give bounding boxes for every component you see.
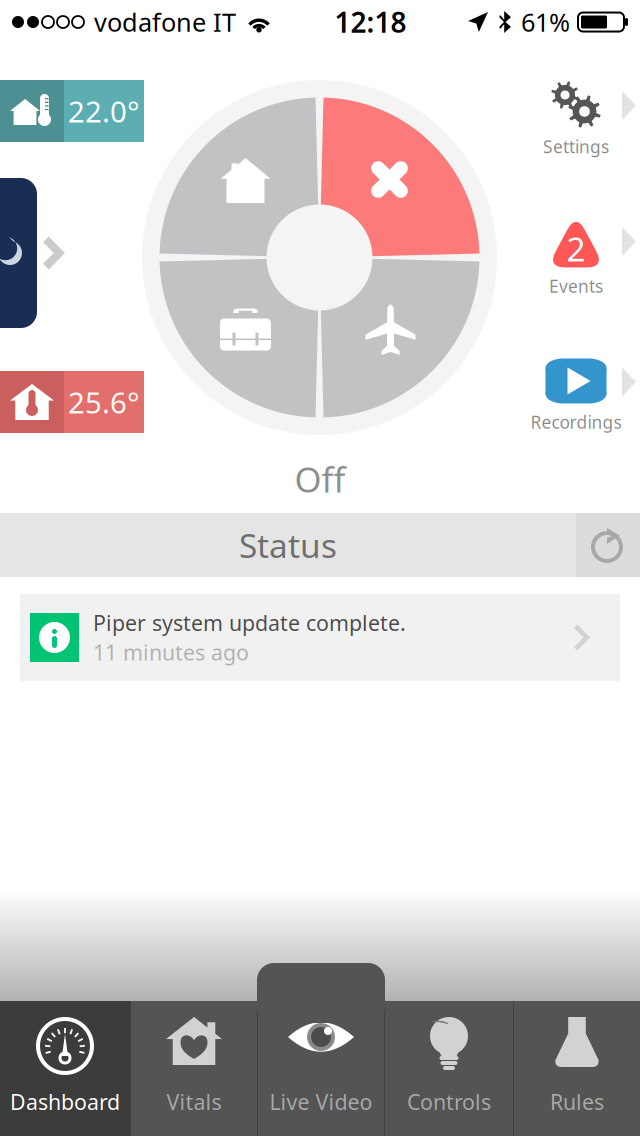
staticText: 2 bbox=[566, 226, 585, 271]
staticText: Recordings bbox=[530, 410, 621, 433]
button[interactable]: Rules bbox=[514, 1001, 640, 1136]
staticText: Piper system update complete. bbox=[93, 609, 406, 637]
button[interactable] bbox=[0, 178, 65, 328]
staticText: Settings bbox=[543, 135, 609, 158]
button[interactable]: Settings bbox=[480, 80, 640, 159]
button[interactable]: Dashboard bbox=[0, 1001, 130, 1136]
staticText: Vitals bbox=[166, 1088, 221, 1116]
staticText: vodafone IT bbox=[94, 5, 236, 39]
button[interactable]: Refresh bbox=[576, 513, 640, 577]
button[interactable]: 25.6° bbox=[0, 371, 144, 433]
staticText: Status bbox=[239, 523, 337, 567]
button[interactable]: Live Video bbox=[258, 1001, 384, 1136]
staticText: Dashboard bbox=[10, 1088, 120, 1116]
staticText: Controls bbox=[407, 1088, 491, 1116]
staticText: Events bbox=[549, 274, 603, 297]
staticText: 12:18 bbox=[334, 3, 406, 41]
staticText: 11 minutes ago bbox=[93, 638, 249, 666]
button[interactable]: Piper system update complete. bbox=[20, 594, 620, 681]
staticText: Off bbox=[294, 456, 345, 502]
button[interactable]: Vitals bbox=[131, 1001, 257, 1136]
button[interactable]: Controls bbox=[385, 1001, 513, 1136]
staticText: 25.6° bbox=[68, 382, 140, 421]
button[interactable]: 2 bbox=[480, 212, 640, 299]
button[interactable]: Recordings bbox=[480, 357, 640, 435]
staticText: Live Video bbox=[269, 1088, 372, 1116]
staticText: Rules bbox=[550, 1088, 604, 1116]
button[interactable]: 22.0° bbox=[0, 80, 144, 142]
staticText: 61% bbox=[521, 5, 570, 39]
staticText: 22.0° bbox=[68, 91, 140, 130]
